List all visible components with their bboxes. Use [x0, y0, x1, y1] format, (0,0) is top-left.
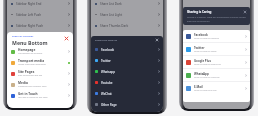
button[interactable]: E-Mail: [183, 82, 250, 94]
staticText: Let's get in Touch on tiny here: [18, 96, 48, 99]
button[interactable]: Site Pages: [7, 68, 73, 79]
button[interactable]: Google Plus: [183, 56, 250, 68]
button[interactable]: Facebook: [91, 44, 163, 55]
staticText: Site Pages: [18, 70, 35, 74]
staticText: Transport media: [18, 59, 45, 63]
staticText: Share our page to Twitter: [194, 50, 217, 53]
button[interactable]: Facebook: [183, 30, 250, 42]
button[interactable]: Twitter: [183, 43, 250, 55]
staticText: CHECK MY FEATURES: [12, 35, 34, 38]
staticText: WeChat: [101, 92, 112, 96]
button[interactable]: Other Page: [91, 99, 163, 110]
button[interactable]: Media: [7, 79, 73, 90]
staticText: Share Thumbs Dark: [100, 24, 129, 28]
staticText: Get in Touch: [18, 92, 38, 96]
staticText: Twitter: [101, 59, 111, 63]
button[interactable]: Get in Touch: [7, 90, 73, 101]
button[interactable]: Homepage: [7, 46, 73, 57]
staticText: WhatsApp: [194, 72, 209, 76]
button[interactable]: WhatsApp: [183, 69, 250, 81]
button[interactable]: Transport media: [7, 57, 73, 68]
button[interactable]: Close: [243, 10, 247, 14]
staticText: Share our page to Facebook: [194, 37, 219, 40]
staticText: Lorem Copy and Paste temp: [18, 63, 46, 66]
button[interactable]: Sidebar Left Push: [7, 9, 73, 20]
staticText: Easy to build list and link: [18, 74, 43, 77]
staticText: Youtube: [101, 81, 113, 85]
button[interactable]: Close: [63, 35, 70, 42]
staticText: Whatsapp: [101, 70, 115, 74]
staticText: Other Page: [101, 103, 117, 107]
staticText: Homepage: [18, 48, 36, 52]
staticText: Facebook: [194, 33, 208, 37]
staticText: Share List Light: [100, 13, 123, 17]
staticText: Sidebar Right End: [16, 2, 42, 6]
staticText: Twitter: [194, 46, 205, 50]
staticText: Share our page to Google Plus: [194, 63, 221, 66]
staticText: E-Mail: [194, 85, 203, 89]
staticText: Sharing is a lifestyle. These will autom…: [187, 16, 247, 22]
staticText: The versions of all layout: [18, 52, 43, 55]
staticText: Menu Bottom: [12, 39, 48, 46]
button[interactable]: Close: [154, 37, 160, 43]
staticText: Share List Dark: [100, 2, 122, 6]
staticText: Media: [18, 81, 28, 85]
staticText: Share our page to WhatsApp: [194, 76, 220, 79]
button[interactable]: Sidebar Right Push: [7, 20, 73, 31]
staticText: Showcase your Projects Style: [18, 85, 47, 88]
staticText: Share our page via E-mail: [194, 89, 217, 92]
button[interactable]: Whatsapp: [91, 66, 163, 77]
staticText: Google Plus: [194, 59, 211, 63]
staticText: Sharing is Caring: [187, 10, 212, 14]
button[interactable]: Sidebar Right End: [7, 0, 73, 9]
staticText: SHARE THIS PAGE VIA: [95, 39, 118, 42]
button[interactable]: Twitter: [91, 55, 163, 66]
button[interactable]: Share List Dark: [91, 0, 163, 9]
staticText: Sidebar Right Push: [16, 24, 44, 28]
button[interactable]: Share Thumbs Dark: [91, 20, 163, 31]
button[interactable]: Youtube: [91, 77, 163, 88]
button[interactable]: Share List Light: [91, 9, 163, 20]
staticText: Sidebar Left Push: [16, 13, 42, 17]
button[interactable]: WeChat: [91, 88, 163, 99]
staticText: Facebook: [101, 48, 115, 52]
